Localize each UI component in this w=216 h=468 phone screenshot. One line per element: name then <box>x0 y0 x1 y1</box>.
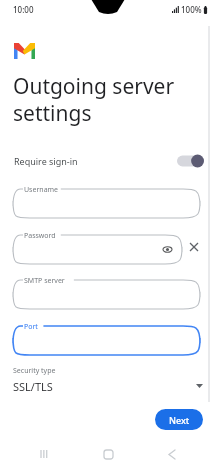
staticText: Next <box>169 414 190 426</box>
staticText: Require sign-in <box>14 155 78 167</box>
button[interactable]: Next <box>155 409 203 430</box>
button[interactable]: Username <box>13 184 200 218</box>
staticText: SMTP server <box>24 276 65 286</box>
staticText: Outgoing server settings <box>13 72 208 127</box>
staticText: Username <box>24 185 59 195</box>
staticText: Port <box>24 322 38 332</box>
button[interactable]: Password <box>13 230 182 264</box>
button[interactable]: Clear <box>185 238 203 256</box>
button[interactable]: Recents <box>24 440 64 468</box>
button[interactable]: Home <box>88 440 128 468</box>
staticText: Security type <box>13 366 56 376</box>
button[interactable]: Back <box>152 440 192 468</box>
button[interactable]: Security type <box>13 366 203 398</box>
button[interactable]: Port <box>13 321 200 355</box>
staticText: 10:00 <box>13 4 34 15</box>
button[interactable]: SMTP server <box>13 275 200 309</box>
staticText: 100% <box>181 4 202 15</box>
button[interactable]: Require sign-in <box>14 149 204 173</box>
staticText: Password <box>24 231 56 241</box>
other: Show password <box>163 245 172 254</box>
staticText: SSL/TLS <box>13 379 53 394</box>
